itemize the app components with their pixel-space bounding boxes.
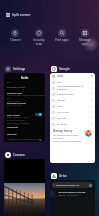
button[interactable]: Settings — [5, 65, 45, 72]
button[interactable]: recommendations from my instagram — [52, 85, 93, 91]
button[interactable]: Cleaner — [3, 29, 27, 42]
button[interactable]: 937 247 ubs — [52, 109, 93, 115]
staticText: fona — [57, 81, 91, 84]
staticText: train side — [57, 117, 91, 120]
staticText: Your Search history helps make your sear… — [53, 134, 83, 143]
staticText: Frequency bands — [7, 101, 27, 104]
button[interactable]: fm station — [52, 121, 93, 127]
staticText: Select the region where you are listenin… — [7, 94, 45, 103]
staticText: Split screen — [12, 12, 31, 17]
button[interactable]: Find apps — [50, 29, 73, 42]
button[interactable]: Manage apps — [73, 29, 96, 46]
staticText: Conditions of use and privacy policy — [7, 138, 39, 141]
staticText: Find apps — [55, 38, 69, 42]
staticText: Cleaner — [10, 38, 21, 42]
staticText: radio — [57, 74, 64, 78]
button[interactable]: train side — [52, 115, 93, 121]
button[interactable] — [4, 159, 45, 216]
staticText: Google — [59, 67, 70, 71]
button[interactable] — [35, 113, 42, 116]
staticText: FM — [7, 81, 11, 84]
staticText: free.pagsetz.nemes re... — [56, 184, 81, 187]
button[interactable]: Radio — [4, 73, 45, 142]
button[interactable]: Split screen — [6, 12, 31, 17]
button[interactable]: Google — [51, 65, 95, 72]
staticText: 937 247 ubs — [57, 111, 91, 114]
staticText: Manage history — [53, 129, 73, 133]
button[interactable]: Security scan — [27, 29, 50, 46]
staticText: image of the day — [57, 93, 91, 96]
staticText: recommendations from my instagram — [57, 85, 91, 91]
staticText: The right families of the doc — [58, 191, 86, 194]
button[interactable]: Drive — [51, 172, 95, 179]
button[interactable]: image of the day — [52, 91, 93, 97]
staticText: 87.5 - 108.0 MHz — [7, 104, 22, 107]
button[interactable]: weather — [52, 97, 93, 103]
staticText: Drive — [59, 174, 67, 178]
button[interactable]: fona — [52, 79, 93, 85]
button[interactable]: song — [52, 103, 93, 109]
staticText: Dark mode — [7, 113, 20, 116]
staticText: App info — [7, 132, 17, 135]
button[interactable]: Camera — [5, 151, 45, 158]
button[interactable]: Back — [52, 182, 93, 188]
staticText: song — [57, 105, 91, 108]
staticText: Camera — [13, 153, 25, 157]
staticText: Manage apps — [79, 38, 91, 46]
staticText: fm station — [57, 123, 91, 126]
staticText: weather — [57, 99, 91, 102]
staticText: seomed - 9 hours ago — [58, 194, 78, 197]
staticText: Advanced — [7, 125, 18, 128]
staticText: Radio — [4, 76, 45, 80]
staticText: Frequency band — [7, 85, 26, 88]
button[interactable]: radio — [50, 73, 95, 163]
staticText: Country code — [7, 91, 23, 94]
button[interactable]: Back — [50, 180, 95, 216]
staticText: Dark theme uses a black background to he… — [7, 116, 34, 125]
staticText: Settings — [13, 67, 26, 71]
button[interactable]: radio — [52, 73, 93, 79]
staticText: Security scan — [33, 38, 45, 46]
